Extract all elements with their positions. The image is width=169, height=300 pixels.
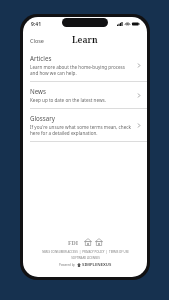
- staticText: If you're unsure what some terms mean, c…: [30, 124, 133, 136]
- staticText: Powered by: [59, 263, 77, 267]
- button[interactable]: News: [23, 82, 147, 108]
- button[interactable]: Glossary: [23, 109, 147, 141]
- staticText: Learn: [72, 34, 98, 46]
- staticText: Glossary: [30, 114, 55, 122]
- staticText: SIMPLENEXUS: [81, 262, 112, 268]
- staticText: 9:41: [31, 21, 41, 28]
- staticText: Keep up to date on the latest news.: [30, 97, 106, 103]
- staticText: NMLS CONSUMER ACCESS | PRIVACY POLICY | …: [42, 250, 129, 254]
- staticText: SOFTWARE LICENSES: [71, 256, 100, 260]
- staticText: News: [30, 87, 46, 95]
- button[interactable]: Close: [23, 33, 51, 48]
- staticText: FDIC: [68, 239, 81, 246]
- staticText: Close: [30, 37, 44, 44]
- staticText: Articles: [30, 54, 52, 62]
- staticText: Learn more about the home-buying process…: [30, 64, 133, 76]
- button[interactable]: Articles: [23, 49, 147, 81]
